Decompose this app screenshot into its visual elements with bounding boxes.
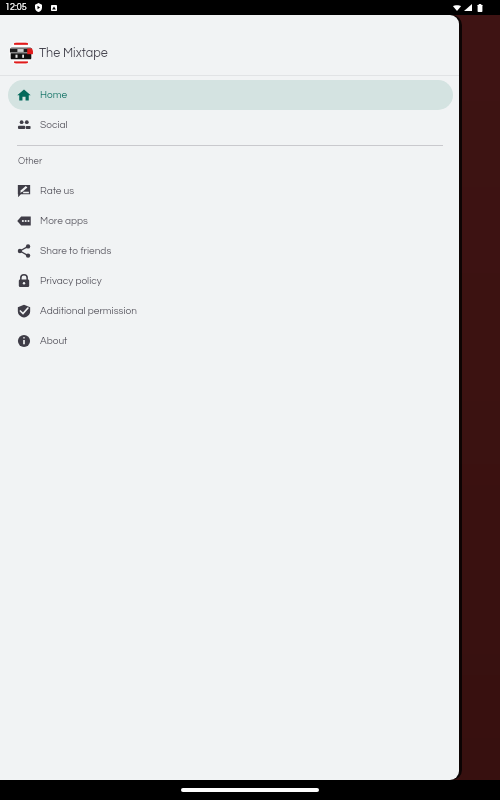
button[interactable]: Privacy policy	[8, 266, 453, 296]
button[interactable]: Share to friends	[8, 236, 453, 266]
button[interactable]: Rate us	[8, 176, 453, 206]
staticText: Social	[40, 120, 68, 130]
button[interactable]: More apps	[8, 206, 453, 236]
staticText: More apps	[40, 216, 88, 226]
staticText: Additional permission	[40, 306, 137, 316]
staticText: About	[40, 336, 68, 346]
staticText: Rate us	[40, 186, 75, 196]
button[interactable]: About	[8, 326, 453, 356]
button[interactable]: Home	[8, 80, 453, 110]
staticText: Share to friends	[40, 246, 112, 256]
staticText: 12:05	[5, 3, 27, 12]
button[interactable]: Social	[8, 110, 453, 140]
staticText: Home	[40, 90, 68, 100]
staticText: The Mixtape	[39, 47, 108, 60]
staticText: Other	[18, 156, 43, 166]
button[interactable]: Additional permission	[8, 296, 453, 326]
staticText: Privacy policy	[40, 276, 102, 286]
button[interactable]: The Mixtape	[0, 15, 459, 75]
